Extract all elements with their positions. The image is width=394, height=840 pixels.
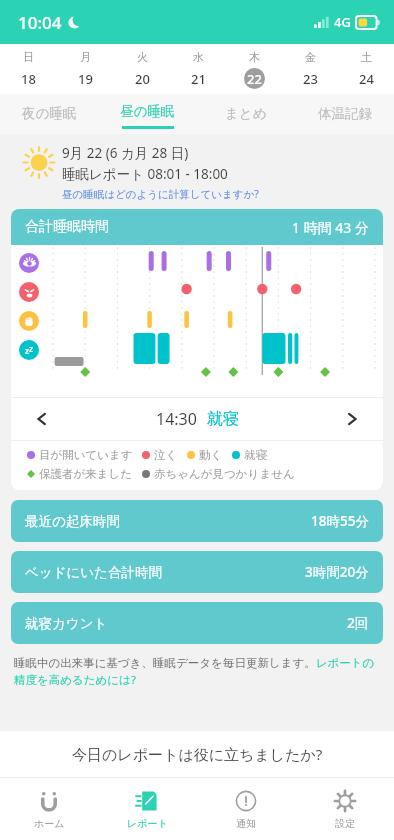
staticText: 睡眠レポート 08:01 - 18:00	[62, 165, 228, 183]
staticText: 2回	[347, 614, 369, 632]
button[interactable]: 体温記録	[295, 94, 394, 134]
staticText: 金	[305, 50, 316, 64]
staticText: 最近の起床時間	[25, 513, 120, 530]
staticText: 21	[191, 70, 206, 88]
button[interactable]: 火	[114, 44, 170, 94]
staticText: 3時間20分	[305, 563, 369, 581]
staticText: 就寝カウント	[25, 615, 108, 632]
staticText: 月	[80, 50, 91, 64]
staticText: 保護者が来ました	[39, 467, 133, 481]
button[interactable]: 昼の睡眠はどのように計算していますか?	[62, 187, 259, 201]
button[interactable]: まとめ	[196, 94, 295, 134]
staticText: 設定	[335, 817, 355, 830]
button[interactable]: 睡眠中の出来事に基づき、睡眠データを毎日更新します。レポートの精度を高めるために…	[14, 656, 380, 688]
button[interactable]: Previous	[27, 404, 57, 434]
button[interactable]: 土	[338, 44, 394, 94]
staticText: 体温記録	[318, 105, 372, 122]
button[interactable]: 金	[282, 44, 338, 94]
staticText: 就寝	[244, 448, 267, 462]
button[interactable]: 最近の起床時間	[11, 500, 383, 542]
staticText: 合計睡眠時間	[25, 218, 109, 236]
button[interactable]: 就寝カウント	[11, 602, 383, 644]
staticText: 火	[137, 50, 148, 64]
staticText: 9月 22 (6 カ月 28 日)	[62, 144, 189, 162]
staticText: 22	[247, 70, 262, 88]
staticText: 目が開いています	[39, 448, 133, 462]
button[interactable]: 月	[57, 44, 114, 94]
staticText: 水	[193, 50, 204, 64]
staticText: 赤ちゃんが見つかりません	[154, 467, 295, 481]
staticText: 10:04	[18, 11, 62, 34]
staticText: 18	[21, 70, 36, 88]
staticText: ベッドにいた合計時間	[25, 564, 162, 581]
staticText: 昼の睡眠	[120, 103, 175, 120]
staticText: レポート	[127, 817, 168, 830]
button[interactable]: レポート	[98, 778, 196, 840]
staticText: 23	[303, 70, 318, 88]
button[interactable]: 通知	[196, 778, 295, 840]
staticText: 今日のレポートは役に立ちましたか?	[72, 744, 323, 764]
staticText: 昼の睡眠はどのように計算していますか?	[62, 187, 259, 201]
staticText: 木	[249, 50, 260, 64]
staticText: 土	[361, 50, 372, 64]
staticText: 夜の睡眠	[22, 105, 77, 122]
button[interactable]: 日	[0, 44, 57, 94]
staticText: Z	[29, 345, 34, 355]
staticText: 18時55分	[311, 512, 369, 530]
staticText: 4G	[334, 13, 351, 31]
staticText: 24	[359, 70, 374, 88]
staticText: 就寝	[207, 409, 239, 429]
staticText: 泣く	[154, 448, 178, 462]
button[interactable]: 木	[226, 44, 282, 94]
staticText: 14:30	[156, 408, 197, 430]
button[interactable]: ホーム	[0, 778, 98, 840]
staticText: 20	[135, 70, 150, 88]
button[interactable]: 夜の睡眠	[0, 94, 98, 134]
staticText: z	[25, 345, 29, 356]
staticText: 睡眠中の出来事に基づき、睡眠データを毎日更新します。レポートの精度を高めるために…	[14, 656, 380, 688]
staticText: 日	[23, 50, 34, 64]
staticText: 動く	[199, 448, 223, 462]
button[interactable]: Next	[337, 404, 367, 434]
button[interactable]: 設定	[295, 778, 394, 840]
staticText: 1 時間 43 分	[292, 218, 369, 237]
staticText: 19	[78, 70, 93, 88]
button[interactable]: 水	[170, 44, 226, 94]
button[interactable]: ベッドにいた合計時間	[11, 551, 383, 593]
staticText: ホーム	[34, 817, 65, 830]
button[interactable]: 昼の睡眠	[98, 94, 196, 134]
staticText: 通知	[236, 817, 256, 830]
staticText: まとめ	[225, 105, 267, 122]
